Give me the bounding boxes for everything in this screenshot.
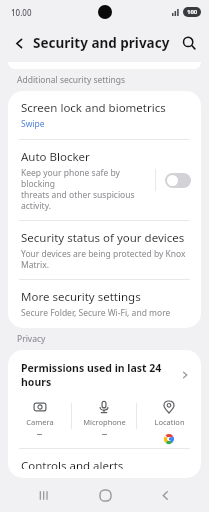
button[interactable]: Security status of your devices	[8, 221, 201, 279]
staticText: Screen lock and biometrics	[21, 100, 166, 116]
staticText: Keep your phone safe by blocking threats…	[21, 167, 155, 211]
staticText: Controls and alerts	[21, 458, 124, 469]
staticText: 10.00	[11, 7, 32, 18]
staticText: Camera	[26, 417, 54, 427]
staticText: Your devices are being protected by Knox…	[21, 248, 191, 270]
staticText: Secure Folder, Secure Wi-Fi, and more	[21, 307, 171, 319]
staticText: Privacy	[17, 333, 46, 345]
staticText: Swipe	[21, 118, 45, 130]
staticText: 100	[187, 8, 198, 16]
staticText: Location	[154, 417, 185, 427]
staticText: Security status of your devices	[21, 230, 185, 246]
button[interactable]: Permissions used in last 24 hours	[8, 350, 201, 398]
button[interactable]: Microphone	[72, 400, 136, 435]
staticText: More security settings	[21, 289, 141, 305]
staticText: Additional security settings	[17, 74, 126, 86]
staticText: Permissions used in last 24 hours	[21, 361, 180, 389]
staticText: Security and privacy	[33, 34, 170, 52]
button[interactable]: Recents	[27, 478, 61, 512]
button[interactable]: Home	[88, 478, 122, 512]
button[interactable]: Back	[6, 30, 32, 56]
button[interactable]: Screen lock and biometrics	[8, 91, 201, 139]
staticText: Auto Blocker	[21, 149, 90, 165]
button[interactable]: Search	[176, 30, 202, 56]
button[interactable]: Auto Blocker	[8, 140, 201, 220]
button[interactable]: Camera	[8, 400, 71, 435]
button[interactable]: Back	[148, 478, 182, 512]
button[interactable]: Location	[137, 400, 201, 444]
button[interactable]: Auto Blocker toggle	[165, 173, 191, 188]
button[interactable]: Controls and alerts	[8, 449, 201, 478]
button[interactable]: More security settings	[8, 280, 201, 328]
staticText: Microphone	[83, 417, 126, 427]
